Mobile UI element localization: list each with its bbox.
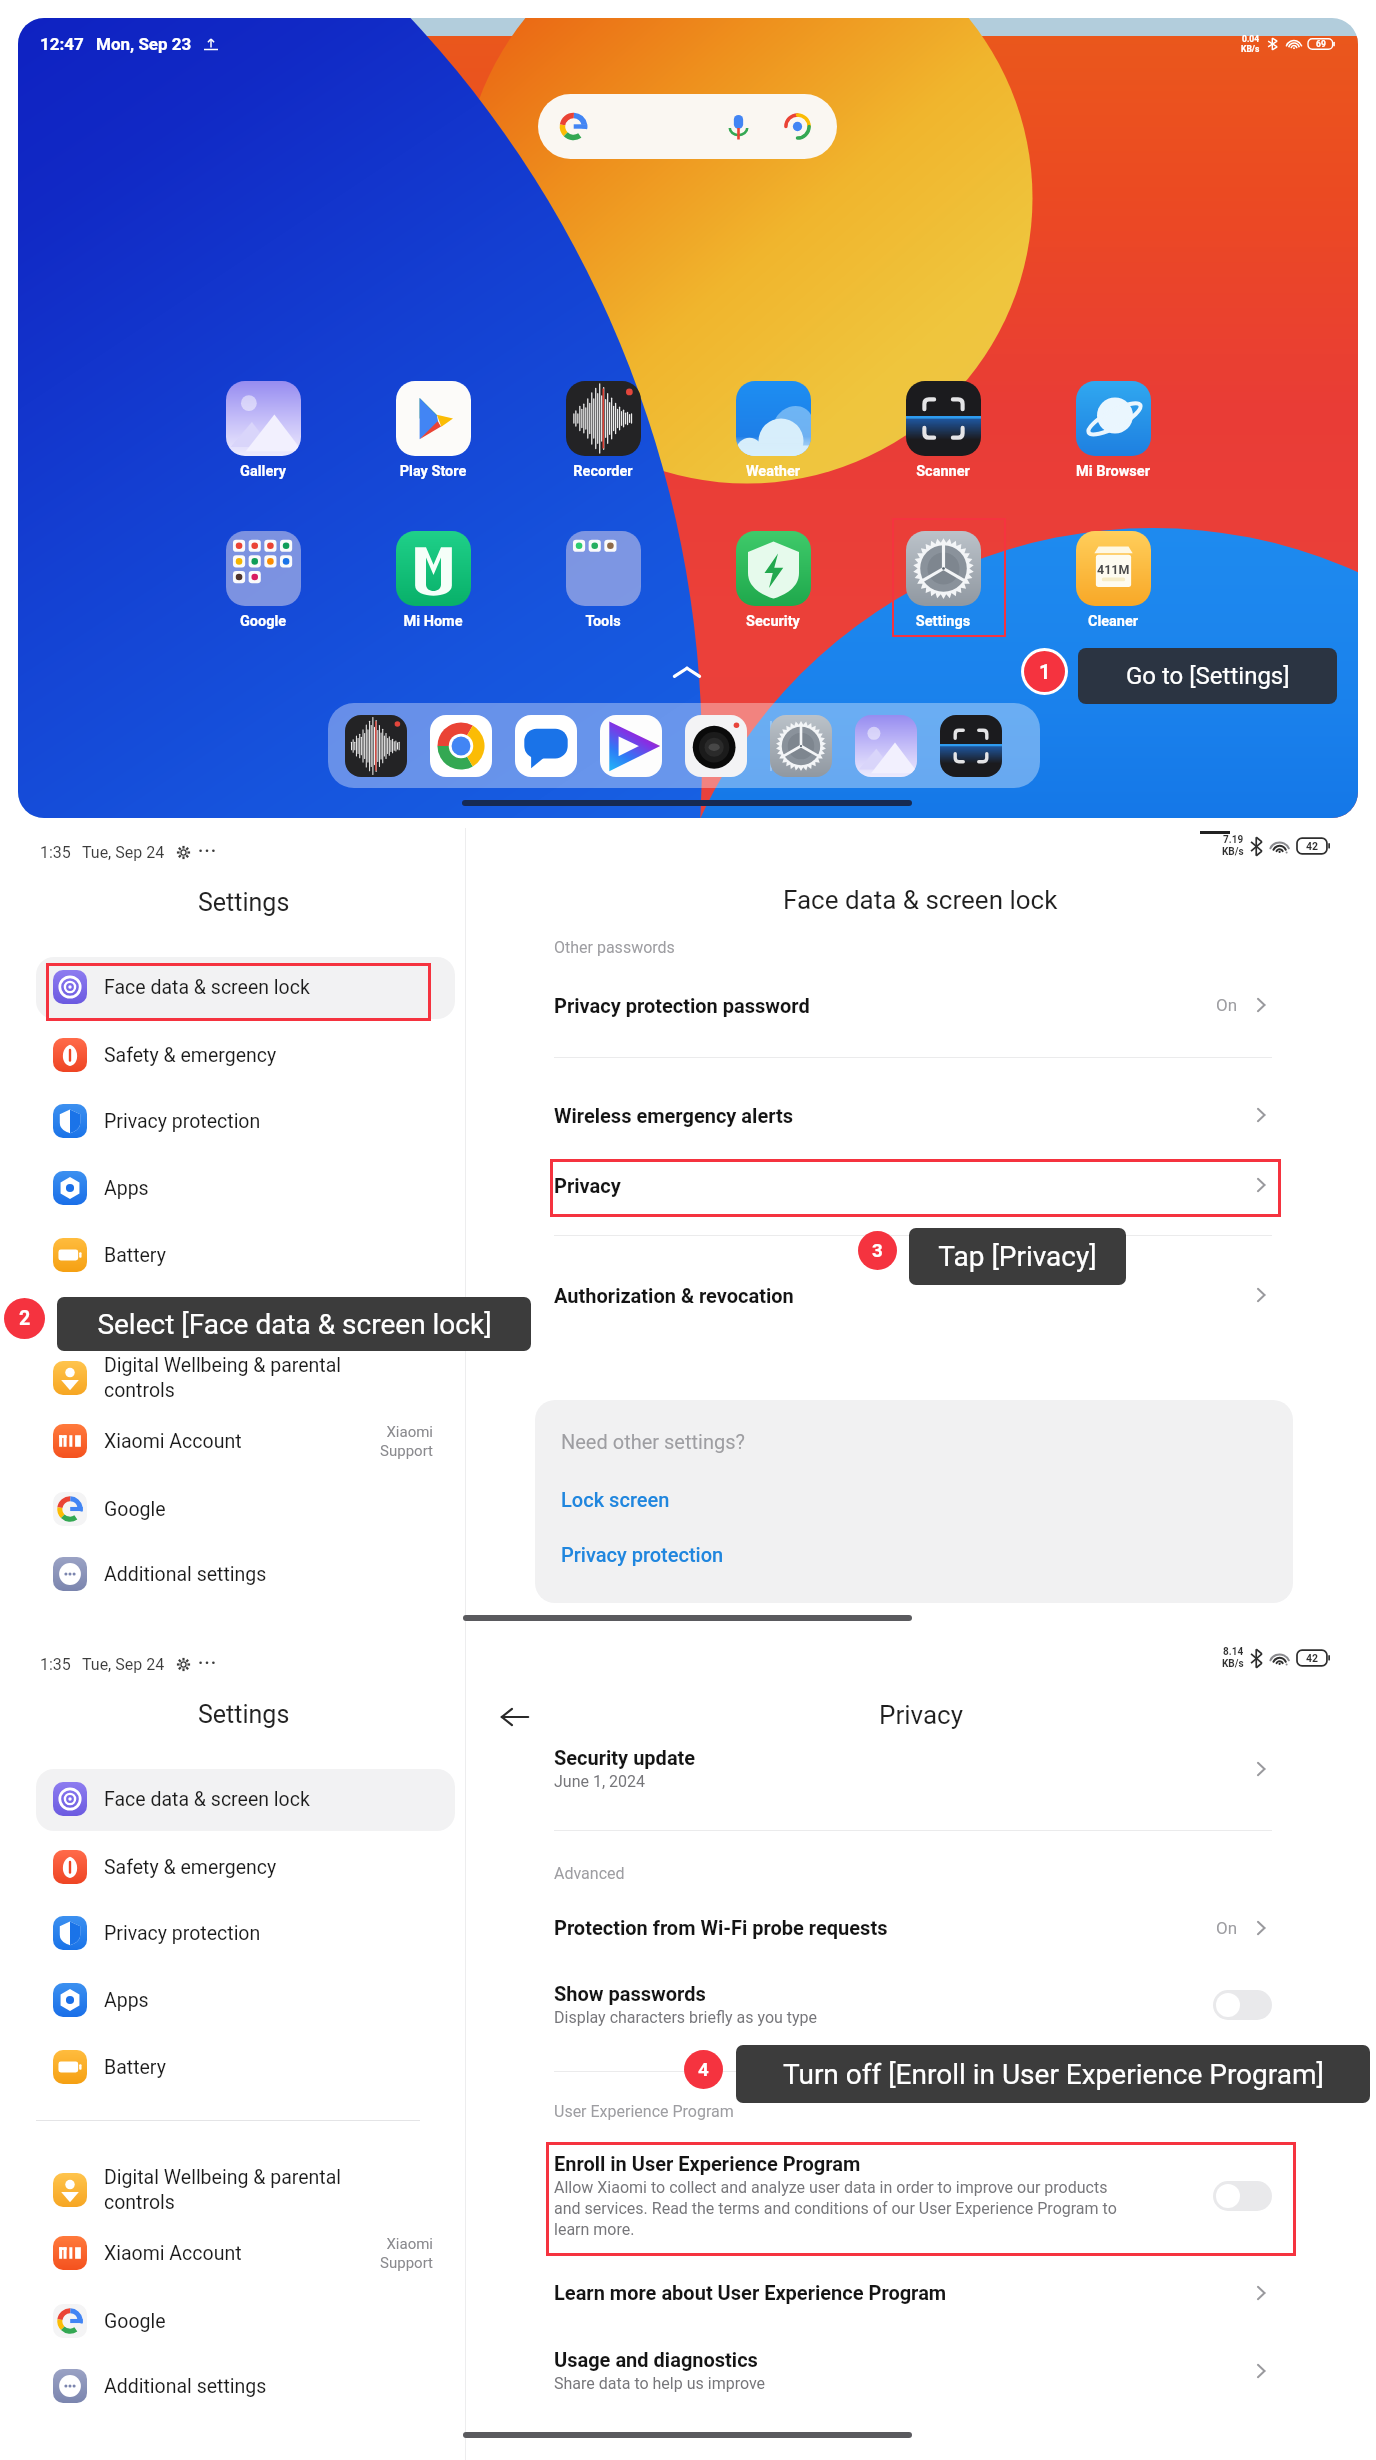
staticText: Weather [713, 463, 833, 480]
button[interactable]: Gallery [855, 715, 917, 777]
staticText: Wireless emergency alerts [554, 1104, 794, 1127]
button[interactable]: Additional settings [0, 2353, 465, 2419]
button[interactable]: Recorder [543, 381, 663, 480]
button[interactable]: Security [713, 531, 833, 630]
button[interactable]: Privacy protection [0, 1088, 465, 1154]
button[interactable]: Search [538, 94, 837, 159]
button[interactable]: Face data & screen lock [0, 1766, 465, 1832]
staticText: Share data to help us improve [554, 2374, 766, 2393]
button[interactable]: Enroll in User Experience Program [554, 2152, 1272, 2239]
button[interactable]: Security update [554, 1746, 1272, 1791]
button[interactable]: Play Store [373, 381, 493, 480]
staticText: Allow Xiaomi to collect and analyze user… [554, 2178, 1135, 2239]
button[interactable]: Apps [0, 1967, 465, 2033]
staticText: Face data & screen lock [104, 1788, 433, 1811]
staticText: 3 [872, 1240, 883, 1262]
staticText: Face data & screen lock [783, 885, 1058, 915]
button[interactable]: Google [203, 531, 323, 630]
button[interactable]: Google [0, 1476, 465, 1542]
button[interactable]: Mi Home [373, 531, 493, 630]
staticText: Show passwords [554, 1982, 706, 2005]
button[interactable]: Learn more about User Experience Program [554, 2281, 1272, 2304]
staticText: Apps [104, 1989, 433, 2012]
staticText: Display characters briefly as you type [554, 2008, 818, 2027]
staticText: June 1, 2024 [554, 1772, 646, 1791]
staticText: 411M [1097, 562, 1130, 577]
button[interactable]: Face data & screen lock [0, 954, 465, 1020]
button[interactable]: Privacy protection [0, 1900, 465, 1966]
staticText: Settings [883, 613, 1003, 630]
staticText: Xiaomi Support [380, 2235, 433, 2272]
staticText: Cleaner [1053, 613, 1173, 630]
staticText: Turn off [Enroll in User Experience Prog… [783, 2058, 1324, 2091]
staticText: Digital Wellbeing & parental controls [104, 2166, 433, 2214]
button[interactable]: Usage and diagnostics [554, 2348, 1272, 2393]
button[interactable]: Additional settings [0, 1541, 465, 1607]
button[interactable]: 411M [1053, 531, 1173, 630]
staticText: Google [203, 613, 323, 630]
button[interactable]: Privacy protection password [554, 979, 1272, 1031]
button[interactable]: Recorder [345, 715, 407, 777]
button[interactable]: Chrome [430, 715, 492, 777]
button[interactable]: Protection from Wi-Fi probe requests [554, 1916, 1272, 1939]
staticText: Settings [198, 1700, 290, 1729]
button[interactable]: Battery [0, 2034, 465, 2100]
button[interactable]: Weather [713, 381, 833, 480]
staticText: Tools [543, 613, 663, 630]
staticText: User Experience Program [554, 2102, 734, 2121]
staticText: Privacy protection [104, 1922, 433, 1945]
button[interactable]: Authorization & revocation [554, 1269, 1272, 1321]
button[interactable]: Toggle [1213, 2181, 1272, 2211]
button[interactable]: Show passwords [554, 1982, 1272, 2027]
button[interactable]: Back [490, 1692, 540, 1742]
staticText: 0.04 [1242, 34, 1260, 44]
staticText: Security update [554, 1746, 696, 1769]
staticText: Battery [104, 2056, 433, 2079]
button[interactable]: Xiaomi Account [0, 2220, 465, 2286]
button[interactable]: Privacy [554, 1159, 1272, 1211]
button[interactable]: Lock screen [561, 1488, 670, 1511]
button[interactable]: Tools [543, 531, 663, 630]
staticText: Need other settings? [561, 1430, 745, 1453]
staticText: Xiaomi Account [104, 2242, 380, 2265]
button[interactable]: Privacy protection [561, 1543, 724, 1566]
staticText: Additional settings [104, 2375, 433, 2398]
staticText: Select [Face data & screen lock] [97, 1308, 492, 1341]
staticText: Privacy protection [104, 1110, 433, 1133]
staticText: Google [104, 2310, 433, 2333]
button[interactable]: Xiaomi Account [0, 1408, 465, 1474]
staticText: 7.19 [1223, 834, 1244, 846]
button[interactable]: Camera [685, 715, 747, 777]
staticText: Other passwords [554, 938, 675, 957]
button[interactable]: Digital Wellbeing & parental controls [0, 2157, 465, 2223]
staticText: Additional settings [104, 1563, 433, 1586]
button[interactable]: Google [0, 2288, 465, 2354]
button[interactable]: Settings [770, 715, 832, 777]
staticText: Privacy protection password [554, 994, 810, 1017]
staticText: Security [713, 613, 833, 630]
button[interactable]: Digital Wellbeing & parental controls [0, 1345, 465, 1411]
staticText: Usage and diagnostics [554, 2348, 758, 2371]
staticText: Enroll in User Experience Program [554, 2152, 861, 2175]
button[interactable]: Play Store [600, 715, 662, 777]
staticText: 12:47 [40, 34, 84, 54]
button[interactable]: Mi Browser [1053, 381, 1173, 480]
staticText: Play Store [373, 463, 493, 480]
staticText: Safety & emergency [104, 1856, 433, 1879]
button[interactable]: Toggle [1213, 1990, 1272, 2020]
button[interactable]: Battery [0, 1222, 465, 1288]
button[interactable]: Scanner [883, 381, 1003, 480]
button[interactable]: Wireless emergency alerts [554, 1089, 1272, 1141]
button[interactable]: Gallery [203, 381, 323, 480]
button[interactable]: Scanner [940, 715, 1002, 777]
button[interactable]: Safety & emergency [0, 1022, 465, 1088]
button[interactable]: Messages [515, 715, 577, 777]
staticText: On [1216, 1918, 1238, 1938]
staticText: Xiaomi Account [104, 1430, 380, 1453]
button[interactable]: Apps [0, 1155, 465, 1221]
staticText: 42 [1306, 1652, 1319, 1664]
staticText: Safety & emergency [104, 1044, 433, 1067]
button[interactable]: Safety & emergency [0, 1834, 465, 1900]
staticText: Mi Browser [1053, 463, 1173, 480]
button[interactable]: Settings [883, 531, 1003, 630]
